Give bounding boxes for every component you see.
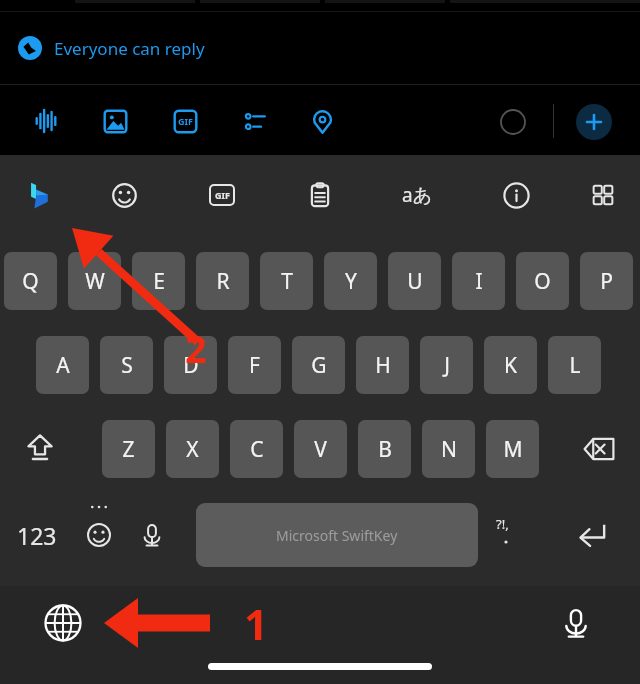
button[interactable]: R [196,252,249,310]
button[interactable]: More options [579,171,627,219]
button[interactable]: Voice typing [548,595,604,651]
staticText: M [503,435,523,464]
button[interactable]: K [484,336,537,394]
staticText: R [216,267,230,296]
button[interactable]: S [100,336,153,394]
button[interactable]: Clipboard [296,171,344,219]
staticText: K [504,351,517,380]
staticText: 1 [244,595,269,652]
button[interactable]: O [516,252,569,310]
button[interactable]: E [132,252,185,310]
staticText: Microsoft SwiftKey [276,526,398,545]
button[interactable]: I [452,252,505,310]
button[interactable]: T [260,252,313,310]
staticText: E [153,267,165,296]
button[interactable]: Z [102,420,155,478]
button[interactable]: D [164,336,217,394]
button[interactable]: Shift [8,420,72,478]
staticText: B [378,435,392,464]
staticText: O [534,267,551,296]
staticText: S [121,351,133,380]
button[interactable]: Microsoft SwiftKey [196,503,478,567]
staticText: X [186,435,199,464]
button[interactable]: C [230,420,283,478]
staticText: C [250,435,264,464]
staticText: ?!, [496,515,509,533]
button[interactable]: Voice [23,98,69,144]
button[interactable]: M [486,420,539,478]
button[interactable]: 123 [6,505,68,565]
button[interactable]: Q [4,252,57,310]
button[interactable]: G [292,336,345,394]
staticText: D [183,351,199,380]
staticText: V [314,435,327,464]
staticText: A [56,351,70,380]
button[interactable]: V [294,420,347,478]
button[interactable]: Poll [232,98,278,144]
staticText: W [85,267,105,296]
button[interactable]: N [422,420,475,478]
staticText: L [569,351,581,380]
button[interactable]: Everyone can reply [6,24,276,72]
button[interactable]: U [388,252,441,310]
button[interactable]: L [548,336,601,394]
button[interactable]: Backspace [566,420,632,478]
button[interactable]: Media [92,98,138,144]
button[interactable]: A [36,336,89,394]
staticText: GIF [178,115,193,127]
button[interactable]: Emoji [72,505,126,565]
staticText: G [311,351,327,380]
button[interactable]: Y [324,252,377,310]
button[interactable]: Bing search [16,171,64,219]
button[interactable]: Location [299,98,345,144]
staticText: F [249,351,260,380]
button[interactable]: ?!, [482,505,538,565]
button[interactable]: Emoji [100,171,148,219]
button[interactable]: Change keyboard language [35,595,91,651]
staticText: Q [22,267,39,296]
button[interactable]: F [228,336,281,394]
staticText: J [444,351,450,380]
staticText: GIF [215,189,230,201]
staticText: U [407,267,423,296]
button[interactable]: GIF [162,98,208,144]
button[interactable]: Voice input [126,505,178,565]
button[interactable]: Character counter [490,99,536,145]
button[interactable]: X [166,420,219,478]
staticText: aあ [402,182,433,208]
button[interactable]: B [358,420,411,478]
button[interactable]: P [580,252,633,310]
staticText: Z [122,435,135,464]
staticText: 123 [17,520,57,551]
staticText: N [441,435,457,464]
staticText: H [375,351,391,380]
button[interactable]: W [68,252,121,310]
button[interactable]: Add post [576,104,612,140]
button[interactable]: Translate [393,171,441,219]
button[interactable]: J [420,336,473,394]
button[interactable]: Enter [556,505,628,565]
staticText: 2 [185,322,207,374]
staticText: Everyone can reply [54,37,205,60]
staticText: I [475,267,483,296]
staticText: Y [345,267,357,296]
button[interactable]: H [356,336,409,394]
button[interactable]: GIF search [198,171,246,219]
staticText: P [600,267,613,296]
button[interactable]: Info [492,171,540,219]
staticText: T [281,267,293,296]
